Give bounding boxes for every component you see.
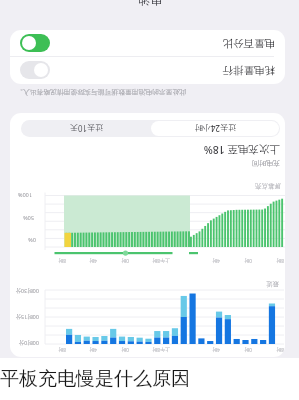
button[interactable]: 耗电量排行	[10, 57, 285, 83]
staticText: 0时	[121, 257, 129, 264]
staticText: 屏幕点亮	[255, 182, 281, 190]
staticText: 8时	[276, 346, 284, 353]
staticText: 00时15分	[15, 313, 39, 321]
button[interactable]: 过去24小时	[151, 121, 279, 136]
staticText: 8时	[276, 257, 284, 264]
staticText: 0时	[121, 346, 129, 353]
staticText: 0时	[244, 257, 252, 264]
staticText: 此处显示的电池用量数据可能与实际使用情况略有出入。	[16, 88, 186, 97]
button[interactable]: 电量百分比	[10, 30, 285, 56]
staticText: 4时	[89, 257, 97, 264]
staticText: 0时	[244, 346, 252, 353]
staticText: 上次充电至 18%	[203, 144, 280, 157]
staticText: 8时	[58, 346, 66, 353]
staticText: 过去24小时	[194, 123, 236, 134]
staticText: 4时	[89, 346, 97, 353]
staticText: 8时	[58, 257, 66, 264]
staticText: 50%	[23, 215, 34, 222]
staticText: 0%	[28, 237, 36, 244]
staticText: 过去10天	[69, 123, 103, 134]
staticText: 上午8时	[152, 257, 170, 264]
staticText: 最近	[266, 280, 279, 288]
staticText: 电池	[138, 0, 162, 8]
staticText: 4时	[212, 257, 220, 264]
staticText: 电量百分比	[222, 37, 275, 50]
staticText: 00时30分	[15, 287, 39, 295]
staticText: 100%	[17, 192, 32, 199]
staticText: 00时0分	[18, 339, 39, 347]
staticText: 上午8时	[152, 346, 170, 353]
button[interactable]: 过去10天	[21, 120, 150, 137]
staticText: 平板充电慢是什么原因	[0, 367, 190, 391]
staticText: 4时	[212, 346, 220, 353]
staticText: 充电时间	[252, 159, 280, 168]
staticText: 耗电量排行	[222, 64, 275, 77]
